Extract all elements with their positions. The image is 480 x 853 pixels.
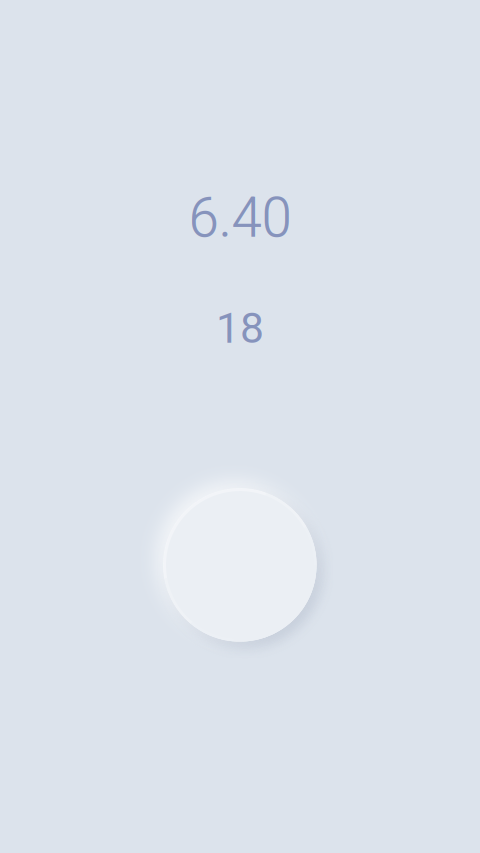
staticText: 18 <box>216 303 264 353</box>
staticText: 6.40 <box>188 186 291 250</box>
button[interactable]: Start <box>130 455 350 675</box>
